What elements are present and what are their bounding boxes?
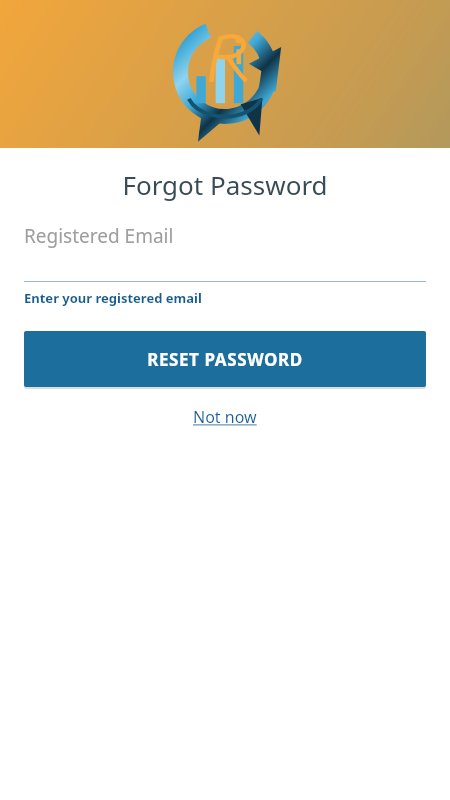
staticText: Enter your registered email bbox=[24, 289, 202, 307]
staticText: RESET PASSWORD bbox=[147, 348, 303, 371]
button[interactable]: Not now bbox=[183, 400, 267, 434]
staticText: Forgot Password bbox=[122, 167, 328, 202]
staticText: Registered Email bbox=[24, 223, 174, 249]
button[interactable]: RESET PASSWORD bbox=[24, 331, 426, 387]
button[interactable]: Registered Email bbox=[24, 220, 426, 282]
staticText: Not now bbox=[193, 406, 257, 428]
